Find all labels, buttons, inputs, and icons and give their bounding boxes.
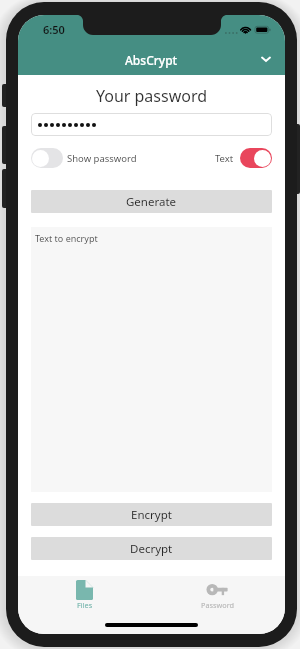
button[interactable]: Files: [18, 576, 151, 610]
staticText: Password: [201, 600, 235, 610]
staticText: Decrypt: [130, 541, 173, 557]
button[interactable]: [31, 113, 272, 136]
staticText: 6:50: [43, 22, 65, 37]
button[interactable]: Collapse: [255, 48, 277, 70]
staticText: Encrypt: [131, 507, 172, 523]
staticText: Your password: [31, 85, 272, 107]
staticText: Generate: [126, 194, 177, 210]
button[interactable]: Show password: [31, 148, 137, 168]
staticText: Text: [215, 152, 234, 165]
staticText: AbsCrypt: [125, 52, 178, 68]
staticText: Files: [77, 600, 93, 610]
staticText: Text to encrypt: [35, 232, 98, 244]
button[interactable]: Generate: [31, 190, 272, 213]
button[interactable]: Decrypt: [31, 537, 272, 560]
button[interactable]: Password: [151, 576, 285, 610]
staticText: Show password: [67, 152, 137, 165]
button[interactable]: Encrypt: [31, 503, 272, 526]
button[interactable]: Text to encrypt: [31, 227, 272, 492]
button[interactable]: Text: [215, 148, 272, 168]
